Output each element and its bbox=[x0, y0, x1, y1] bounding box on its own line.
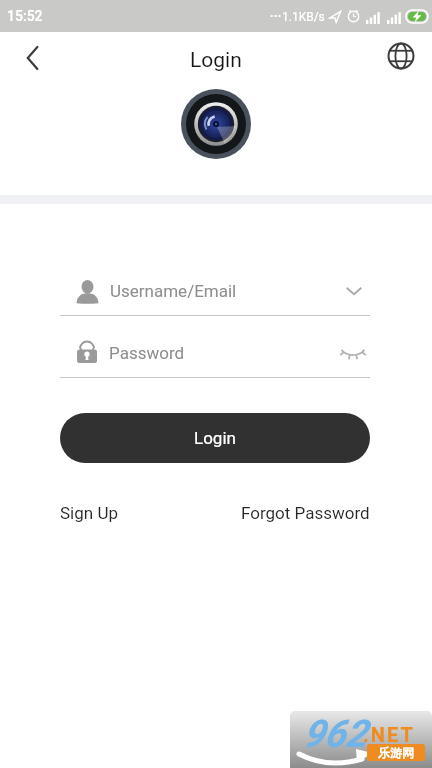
staticText: 15:52 bbox=[7, 8, 43, 24]
button[interactable]: Forgot Password bbox=[241, 495, 370, 531]
button[interactable] bbox=[376, 32, 432, 88]
staticText: 1.1KB/s bbox=[282, 10, 325, 24]
staticText: Username/Email bbox=[110, 281, 237, 301]
button[interactable]: Login bbox=[60, 413, 370, 463]
staticText: ... bbox=[270, 5, 282, 20]
staticText: Login bbox=[194, 428, 236, 448]
button[interactable]: Sign Up bbox=[60, 495, 118, 531]
button[interactable] bbox=[0, 32, 56, 88]
staticText: Login bbox=[190, 48, 242, 73]
staticText: Password bbox=[109, 343, 185, 363]
button[interactable]: Password bbox=[60, 329, 370, 378]
staticText: 962 bbox=[303, 712, 367, 757]
staticText: Forgot Password bbox=[241, 503, 370, 523]
staticText: 乐游网 bbox=[378, 745, 414, 760]
staticText: .NET bbox=[363, 723, 415, 746]
staticText: Sign Up bbox=[60, 503, 118, 523]
button[interactable]: Username/Email bbox=[60, 267, 370, 316]
